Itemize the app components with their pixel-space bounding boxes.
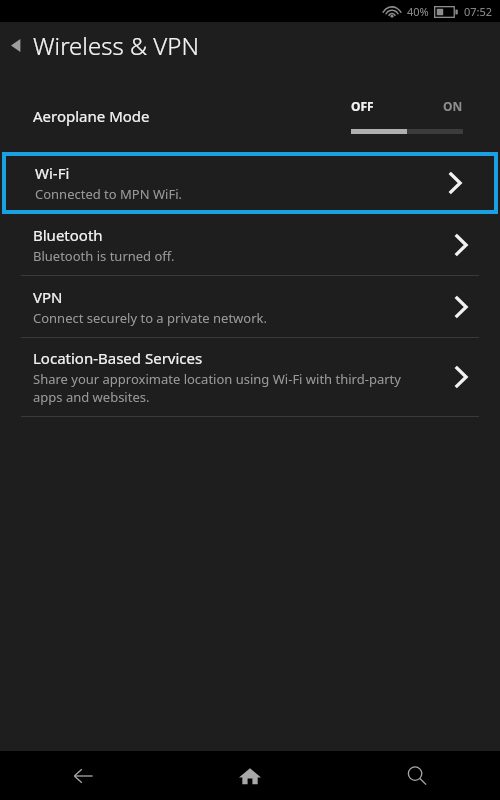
button[interactable]: Search: [333, 751, 500, 800]
staticText: Bluetooth is turned off.: [33, 247, 175, 265]
staticText: 07:52: [464, 4, 493, 19]
staticText: Connected to MPN WiFi.: [35, 185, 183, 203]
button[interactable]: Wi-Fi: [6, 156, 494, 210]
staticText: apps and websites.: [33, 388, 150, 406]
staticText: Wireless & VPN: [33, 29, 199, 62]
staticText: Wi-Fi: [35, 163, 70, 183]
staticText: ON: [443, 98, 463, 114]
staticText: OFF: [351, 98, 374, 114]
button[interactable]: OFF: [351, 98, 463, 134]
button[interactable]: Back: [0, 22, 500, 68]
staticText: Share your approximate location using Wi…: [33, 370, 401, 388]
button[interactable]: VPN: [0, 276, 500, 337]
staticText: Connect securely to a private network.: [33, 309, 268, 327]
staticText: 40%: [407, 4, 429, 19]
button[interactable]: Back: [0, 751, 166, 800]
button[interactable]: Home: [166, 751, 333, 800]
staticText: Location-Based Services: [33, 348, 203, 368]
button[interactable]: Location-Based Services: [0, 338, 500, 416]
staticText: VPN: [33, 287, 63, 307]
button[interactable]: Bluetooth: [0, 214, 500, 275]
staticText: Aeroplane Mode: [33, 106, 150, 126]
staticText: Bluetooth: [33, 225, 103, 245]
